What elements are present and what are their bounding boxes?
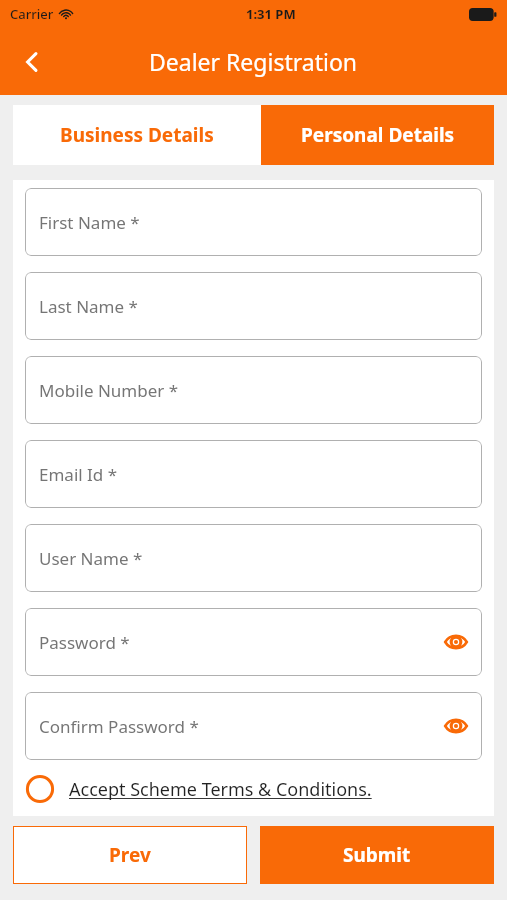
button[interactable]: Confirm Password * [25,692,482,760]
staticText: Mobile Number * [39,379,179,402]
button[interactable]: User Name * [25,524,482,592]
staticText: Password * [39,631,130,654]
staticText: Accept Scheme Terms & Conditions. [69,777,372,802]
button[interactable]: Email Id * [25,440,482,508]
button[interactable]: Mobile Number * [25,356,482,424]
button[interactable]: Password * [25,608,482,676]
staticText: Dealer Registration [149,46,358,77]
staticText: Submit [343,842,411,868]
button[interactable]: Accept Scheme Terms & Conditions. [25,774,482,804]
button[interactable]: Prev [13,826,247,884]
button[interactable]: Show password [444,714,468,738]
staticText: Confirm Password * [39,715,199,738]
staticText: User Name * [39,547,143,570]
staticText: Business Details [60,122,214,148]
staticText: Carrier [10,5,54,23]
staticText: First Name * [39,211,140,234]
button[interactable]: Submit [260,826,494,884]
button[interactable]: First Name * [25,188,482,256]
staticText: Prev [109,842,151,868]
button[interactable]: Show password [444,630,468,654]
button[interactable]: Back [8,38,56,86]
staticText: Personal Details [301,122,455,148]
staticText: Last Name * [39,295,138,318]
button[interactable]: Business Details [13,105,261,165]
staticText: Email Id * [39,463,118,486]
button[interactable]: Personal Details [261,105,494,165]
button[interactable]: Last Name * [25,272,482,340]
staticText: 1:31 PM [246,5,296,23]
